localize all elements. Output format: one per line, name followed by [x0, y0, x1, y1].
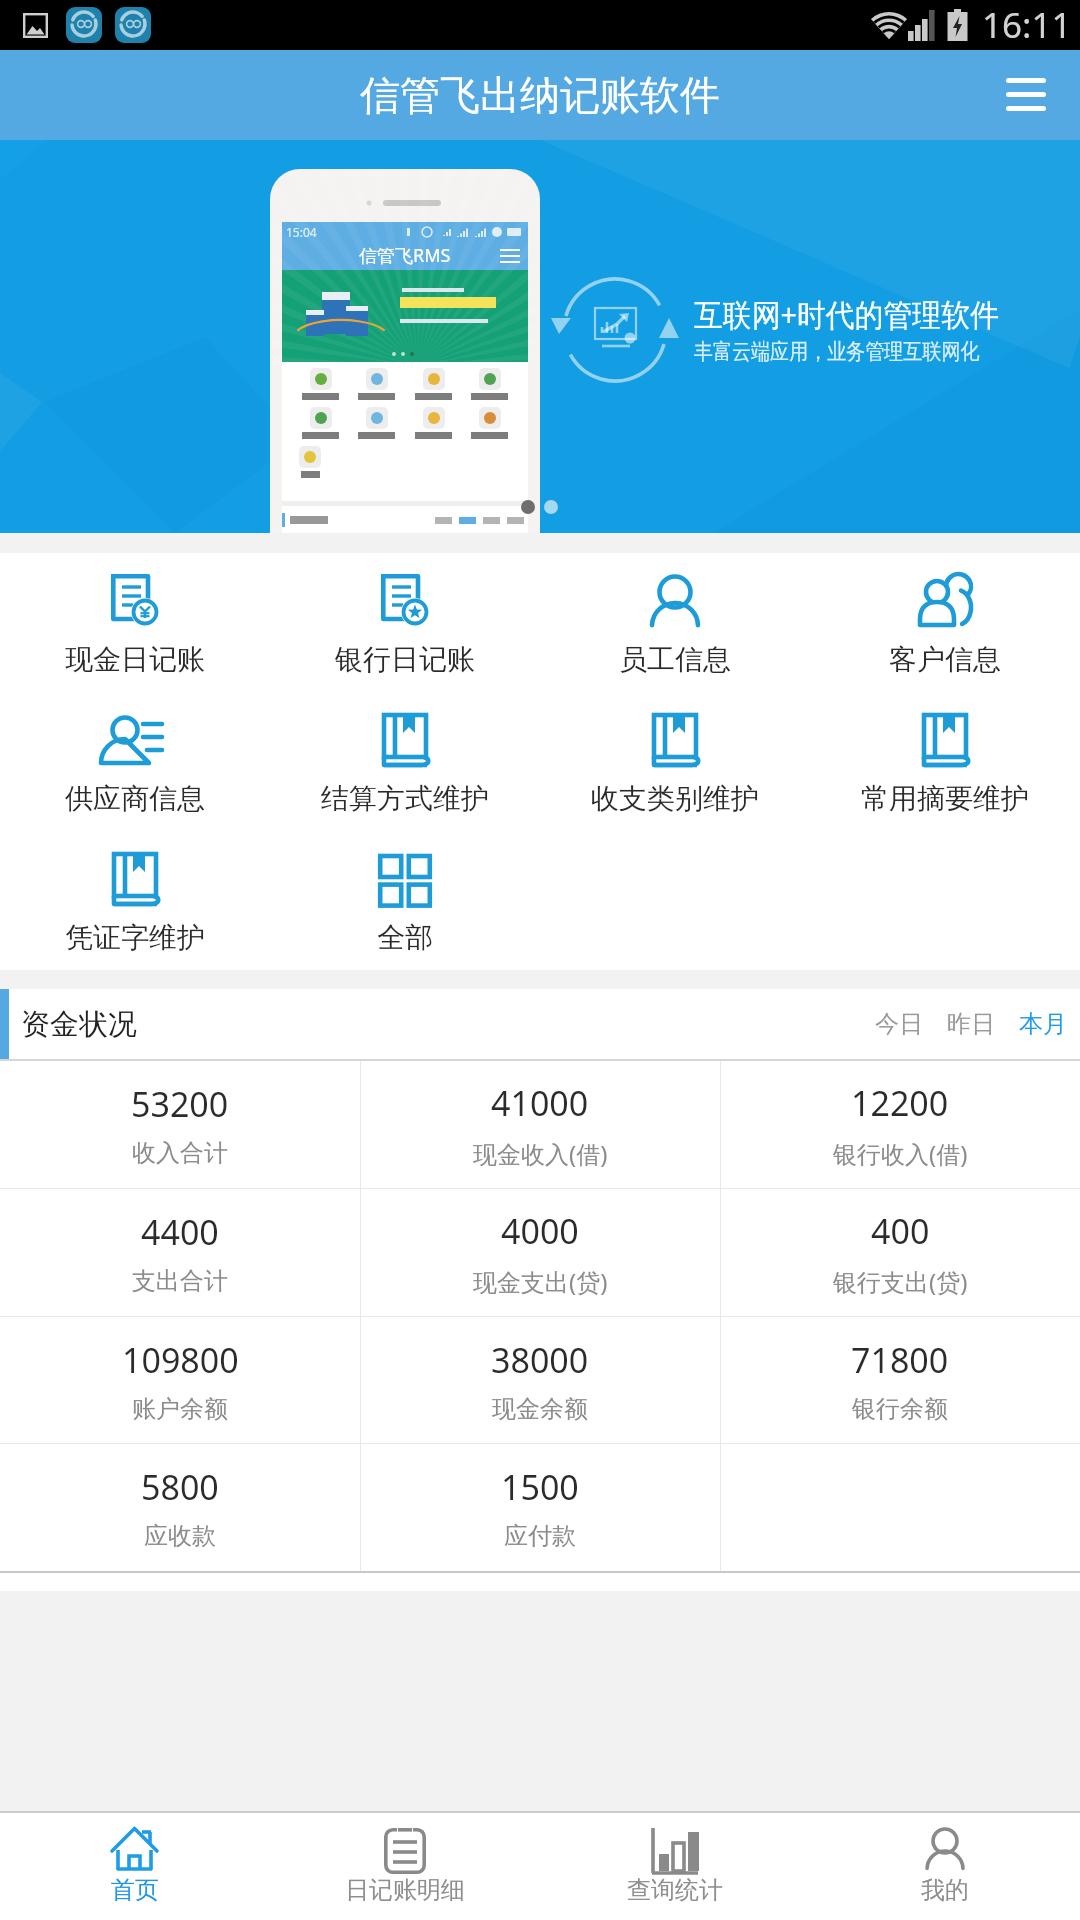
button[interactable]: 5800	[0, 1444, 360, 1571]
staticText: 现金收入(借)	[473, 1137, 608, 1170]
button[interactable]: 53200	[0, 1061, 360, 1188]
staticText: 4400	[141, 1209, 219, 1255]
staticText: 收支类别维护	[591, 781, 759, 816]
button[interactable]: 我的	[810, 1813, 1080, 1920]
staticText: 供应商信息	[65, 781, 205, 816]
button[interactable]: 常用摘要维护	[810, 692, 1080, 831]
staticText: 账户余额	[132, 1394, 228, 1424]
button[interactable]: 今日	[863, 991, 935, 1057]
staticText: 互联网+时代的管理软件	[694, 293, 999, 335]
staticText: 支出合计	[132, 1266, 228, 1296]
staticText: 本月	[1019, 1009, 1067, 1039]
staticText: 38000	[491, 1337, 589, 1383]
staticText: 109800	[122, 1337, 239, 1383]
staticText: 41000	[491, 1080, 589, 1126]
button[interactable]: 41000	[360, 1061, 720, 1188]
button[interactable]: 首页	[0, 1813, 270, 1920]
staticText: 应付款	[504, 1521, 576, 1551]
staticText: 客户信息	[889, 642, 1001, 677]
staticText: 53200	[131, 1081, 229, 1127]
staticText: 银行支出(贷)	[833, 1265, 968, 1298]
staticText: 首页	[111, 1875, 159, 1905]
staticText: 常用摘要维护	[861, 781, 1029, 816]
staticText: 71800	[851, 1337, 949, 1383]
staticText: 丰富云端应用，业务管理互联网化	[694, 338, 979, 366]
button[interactable]: 银行日记账	[270, 553, 540, 692]
button[interactable]: Menu	[992, 50, 1080, 140]
staticText: 400	[871, 1208, 930, 1254]
staticText: 12200	[851, 1080, 949, 1126]
staticText: 收入合计	[132, 1138, 228, 1168]
button[interactable]: 38000	[360, 1317, 720, 1443]
button[interactable]: 日记账明细	[270, 1813, 540, 1920]
staticText: 1500	[501, 1464, 579, 1510]
button[interactable]: 109800	[0, 1317, 360, 1443]
staticText: 资金状况	[21, 1006, 137, 1043]
staticText: 信管飞出纳记账软件	[360, 70, 720, 120]
button[interactable]: 结算方式维护	[270, 692, 540, 831]
button[interactable]: 400	[720, 1189, 1080, 1316]
staticText: 结算方式维护	[321, 781, 489, 816]
button[interactable]: 供应商信息	[0, 692, 270, 831]
staticText: 全部	[377, 920, 433, 955]
button[interactable]: 12200	[720, 1061, 1080, 1188]
button[interactable]: 71800	[720, 1317, 1080, 1443]
staticText: 银行日记账	[335, 642, 475, 677]
staticText: 凭证字维护	[65, 920, 205, 955]
button[interactable]: 昨日	[935, 991, 1007, 1057]
staticText: 日记账明细	[345, 1875, 465, 1905]
button[interactable]: 员工信息	[540, 553, 810, 692]
staticText: 银行余额	[852, 1394, 948, 1424]
staticText: 员工信息	[619, 642, 731, 677]
button[interactable]: 现金日记账	[0, 553, 270, 692]
staticText: 现金余额	[492, 1394, 588, 1424]
staticText: 今日	[875, 1009, 923, 1039]
button[interactable]: 查询统计	[540, 1813, 810, 1920]
staticText: 4000	[501, 1208, 579, 1254]
staticText: 现金日记账	[65, 642, 205, 677]
button[interactable]: 1500	[360, 1444, 720, 1571]
staticText: 5800	[141, 1464, 219, 1510]
button[interactable]: 4400	[0, 1189, 360, 1316]
button[interactable]: 4000	[360, 1189, 720, 1316]
staticText: 应收款	[144, 1521, 216, 1551]
staticText: 15:04	[286, 224, 317, 240]
button[interactable]: 客户信息	[810, 553, 1080, 692]
staticText: 16:11	[982, 1, 1072, 49]
button[interactable]: 本月	[1007, 991, 1079, 1057]
staticText: 查询统计	[627, 1875, 723, 1905]
button[interactable]: 收支类别维护	[540, 692, 810, 831]
staticText: 我的	[921, 1875, 969, 1905]
button[interactable]: 全部	[270, 831, 540, 970]
staticText: 银行收入(借)	[833, 1137, 968, 1170]
staticText: 昨日	[947, 1009, 995, 1039]
button[interactable]: Promotional banner	[0, 140, 1080, 533]
staticText: 现金支出(贷)	[473, 1265, 608, 1298]
button[interactable]: 凭证字维护	[0, 831, 270, 970]
staticText: 信管飞RMS	[359, 243, 451, 268]
